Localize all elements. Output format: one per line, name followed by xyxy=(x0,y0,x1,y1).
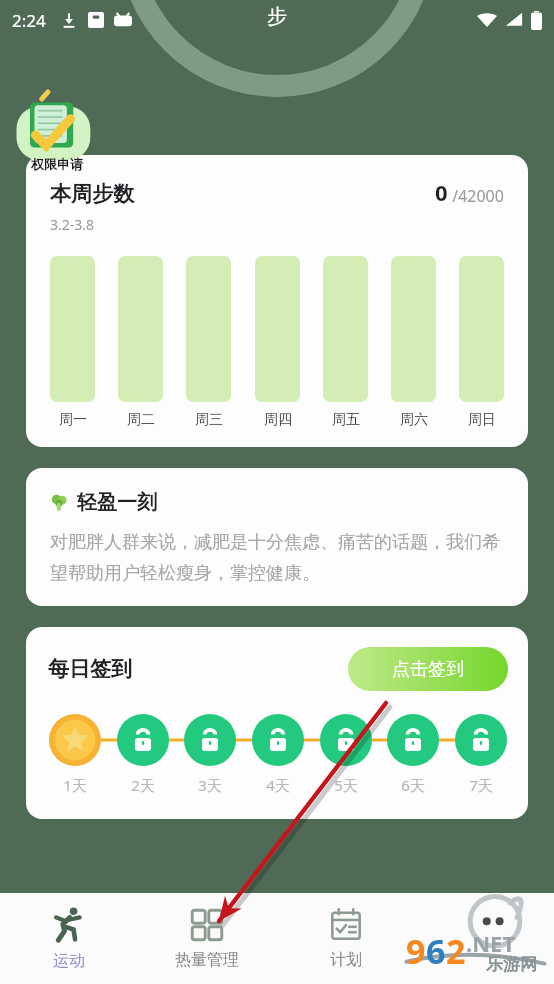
staticText: 6 xyxy=(426,928,446,974)
staticText: 点击签到 xyxy=(392,658,464,681)
staticText: 本周步数 xyxy=(50,181,134,207)
button[interactable]: 本周步数 xyxy=(26,155,528,447)
button[interactable]: 未解锁第3天 xyxy=(183,713,237,767)
staticText: 2天 xyxy=(131,775,155,795)
staticText: 周一 xyxy=(59,411,87,429)
button[interactable]: 计划 xyxy=(276,893,415,984)
staticText: 权限申请 xyxy=(31,156,83,172)
staticText: 3天 xyxy=(198,775,222,795)
staticText: 周五 xyxy=(332,411,360,429)
staticText: 计划 xyxy=(330,950,362,970)
staticText: 2:24 xyxy=(12,9,46,32)
button[interactable]: 权限申请 xyxy=(12,90,102,180)
staticText: 运动 xyxy=(53,951,85,971)
staticText: 9 xyxy=(406,928,426,974)
staticText: 4天 xyxy=(266,775,290,795)
staticText: 6天 xyxy=(401,775,425,795)
button[interactable]: 未解锁第7天 xyxy=(454,713,508,767)
staticText: 2 xyxy=(446,928,466,974)
button[interactable]: 未解锁第5天 xyxy=(319,713,373,767)
staticText: 每日签到 xyxy=(48,656,132,682)
staticText: 3.2-3.8 xyxy=(50,215,95,234)
staticText: 周四 xyxy=(264,411,292,429)
staticText: .NET xyxy=(466,928,516,958)
staticText: 步 xyxy=(267,4,287,29)
button[interactable]: 轻盈一刻 xyxy=(26,468,528,606)
staticText: 0 xyxy=(435,177,448,207)
button[interactable]: 运动 xyxy=(0,893,138,984)
button[interactable]: 未解锁第2天 xyxy=(116,713,170,767)
button[interactable]: 热量管理 xyxy=(138,893,276,984)
staticText: 周三 xyxy=(195,411,223,429)
staticText: 周二 xyxy=(127,411,155,429)
staticText: 热量管理 xyxy=(175,950,239,970)
staticText: 1天 xyxy=(63,775,87,795)
staticText: 乐游网 xyxy=(486,954,537,975)
button[interactable]: 已签到第1天 xyxy=(48,713,102,767)
staticText: /42000 xyxy=(448,185,504,207)
staticText: 轻盈一刻 xyxy=(77,490,157,515)
button[interactable]: 未解锁第4天 xyxy=(251,713,305,767)
staticText: 周日 xyxy=(468,411,496,429)
staticText: 对肥胖人群来说，减肥是十分焦虑、痛苦的话题，我们希望帮助用户轻松瘦身，掌控健康。 xyxy=(50,531,504,584)
staticText: 5天 xyxy=(334,775,358,795)
button[interactable]: 点击签到 xyxy=(348,647,508,691)
staticText: 周六 xyxy=(400,411,428,429)
staticText: 7天 xyxy=(469,775,493,795)
button[interactable]: 未解锁第6天 xyxy=(386,713,440,767)
